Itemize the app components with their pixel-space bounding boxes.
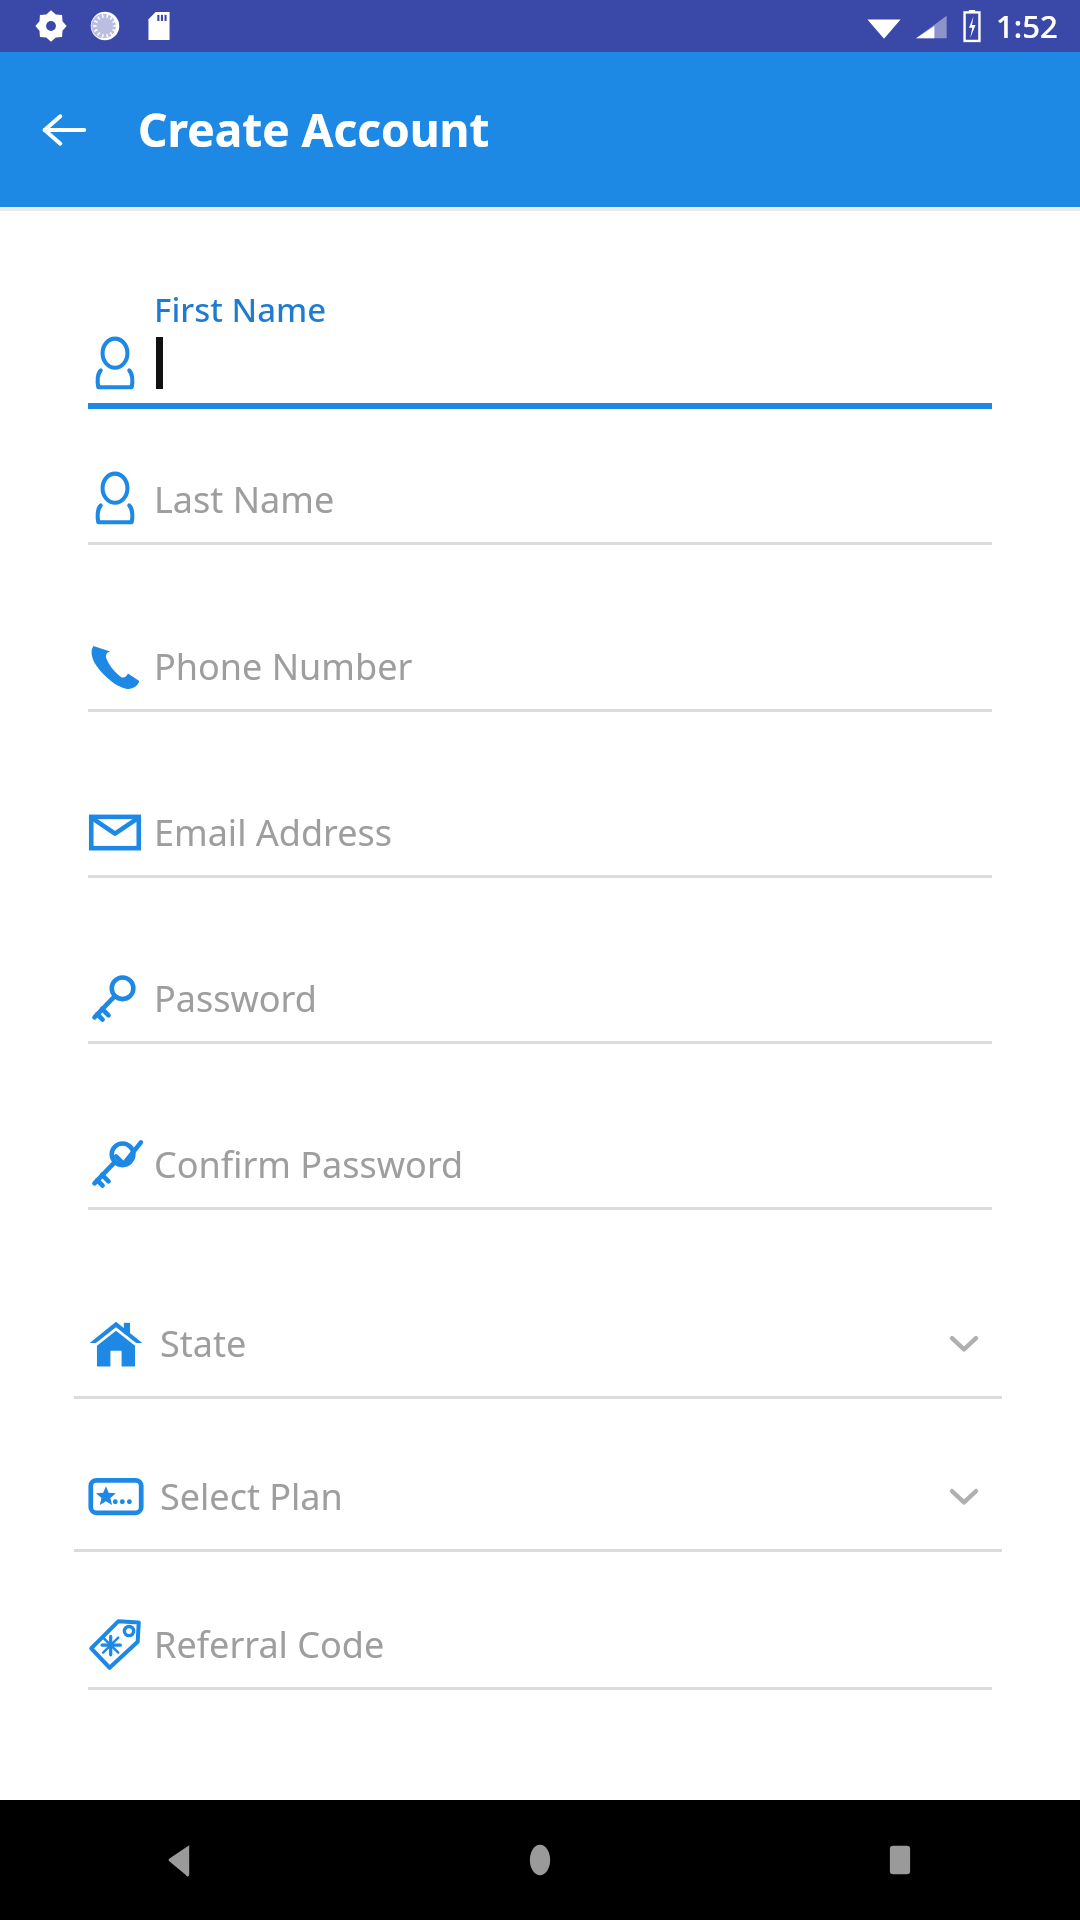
staticText: Email Address [154, 808, 393, 857]
button[interactable]: Home [360, 1800, 720, 1920]
button[interactable]: Referral Code [88, 1606, 992, 1690]
button[interactable]: Phone Number [88, 628, 992, 712]
staticText: 1:52 [996, 5, 1058, 47]
button[interactable]: Recent apps [720, 1800, 1080, 1920]
button[interactable]: Confirm Password [88, 1126, 992, 1210]
button[interactable]: Password [88, 960, 992, 1044]
staticText: Select Plan [160, 1472, 343, 1521]
staticText: Last Name [154, 475, 335, 524]
button[interactable]: Select Plan [74, 1452, 1002, 1552]
button[interactable]: First Name [88, 287, 992, 411]
staticText: Confirm Password [154, 1140, 464, 1189]
staticText: First Name [154, 287, 327, 332]
staticText: Referral Code [154, 1620, 385, 1669]
button[interactable]: State [74, 1299, 1002, 1399]
button[interactable]: Back [28, 94, 100, 166]
staticText: Phone Number [154, 642, 413, 691]
staticText: State [160, 1319, 247, 1368]
button[interactable]: Last Name [88, 461, 992, 545]
button[interactable]: Back [0, 1800, 360, 1920]
button[interactable]: Email Address [88, 794, 992, 878]
staticText: Create Account [138, 98, 490, 161]
staticText: Password [154, 974, 317, 1023]
